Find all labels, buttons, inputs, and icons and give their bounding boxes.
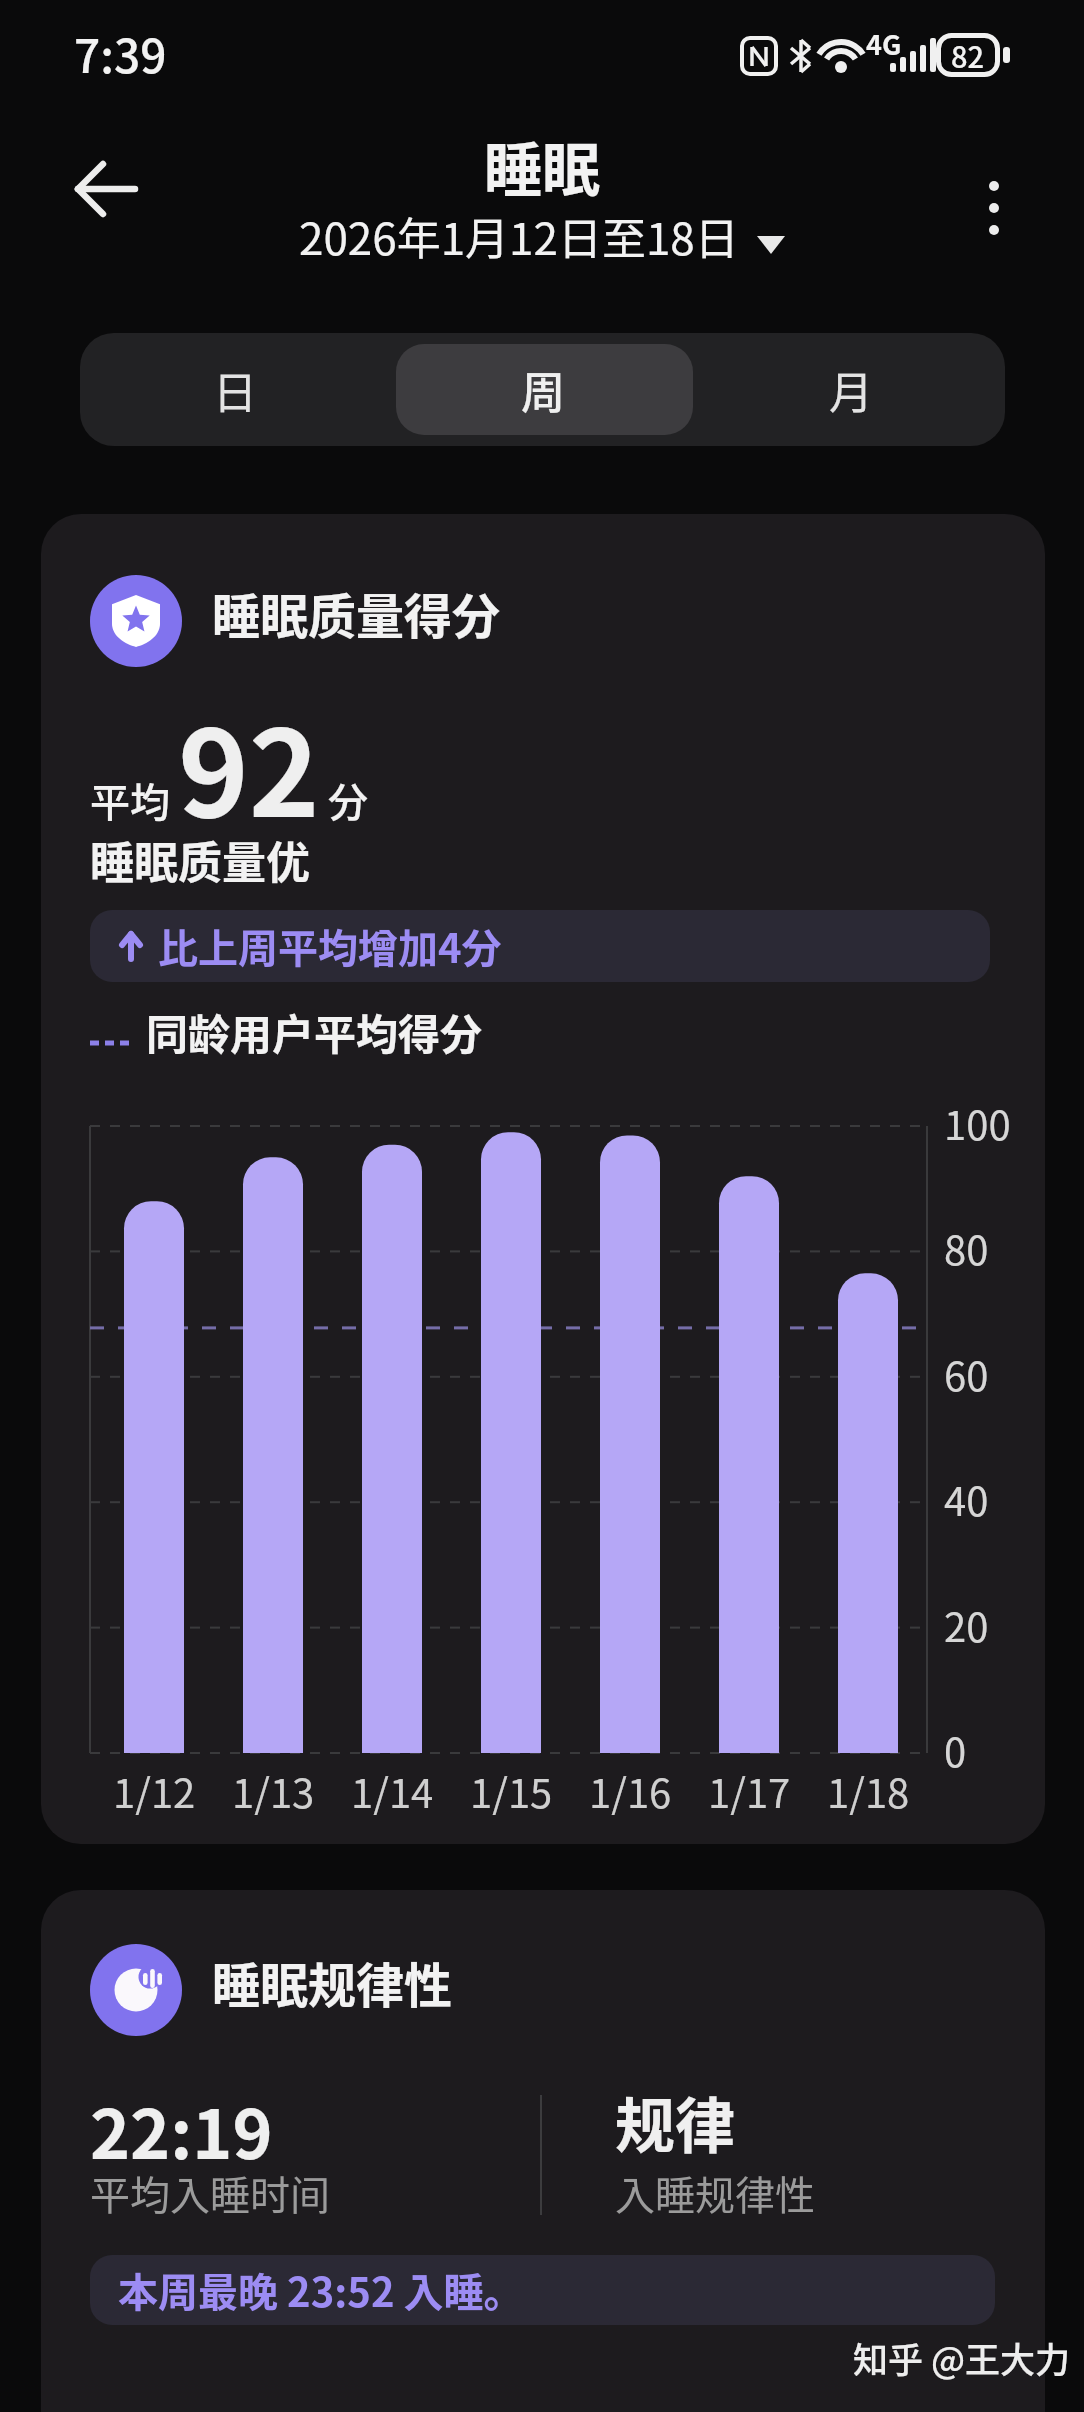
staticText: 22:19: [90, 2080, 273, 2178]
staticText: 分: [328, 771, 368, 829]
button[interactable]: [56, 150, 146, 230]
button[interactable]: 2026年1月12日至18日: [0, 204, 1084, 268]
staticText: 平均入睡时间: [90, 2164, 330, 2222]
staticText: 2026年1月12日至18日: [299, 204, 739, 268]
staticText: 4G: [866, 24, 902, 63]
staticText: 1/13: [232, 1762, 315, 1820]
staticText: 睡眠质量得分: [212, 578, 501, 648]
staticText: 7:39: [74, 20, 167, 87]
staticText: 82: [951, 34, 985, 76]
staticText: 睡眠: [484, 124, 601, 208]
staticText: 0: [944, 1721, 967, 1779]
staticText: 入睡规律性: [615, 2164, 815, 2222]
button[interactable]: 月: [697, 333, 1005, 446]
staticText: 40: [944, 1470, 989, 1528]
staticText: 同龄用户平均得分: [146, 1001, 483, 1062]
staticText: 1/14: [351, 1762, 434, 1820]
button[interactable]: 周: [389, 333, 697, 446]
staticText: 规律: [615, 2078, 735, 2165]
staticText: 本周最晚 23:52 入睡。: [118, 2261, 524, 2319]
staticText: 20: [944, 1596, 989, 1654]
button[interactable]: [958, 168, 1030, 248]
staticText: 睡眠规律性: [212, 1947, 453, 2017]
staticText: 月: [829, 358, 873, 422]
button[interactable]: 睡眠质量得分: [41, 514, 1045, 1844]
staticText: 比上周平均增加4分: [158, 917, 502, 975]
button[interactable]: 睡眠规律性: [41, 1890, 1045, 2412]
staticText: 平均: [90, 771, 170, 829]
staticText: 80: [944, 1219, 989, 1277]
staticText: 日: [213, 358, 257, 422]
button[interactable]: 日: [80, 333, 389, 446]
staticText: 100: [944, 1094, 1011, 1152]
staticText: 1/18: [827, 1762, 910, 1820]
staticText: 1/12: [113, 1762, 196, 1820]
staticText: 睡眠质量优: [90, 828, 310, 892]
staticText: 1/16: [589, 1762, 672, 1820]
staticText: 92: [178, 678, 320, 852]
staticText: 1/15: [470, 1762, 553, 1820]
staticText: 60: [944, 1345, 989, 1403]
staticText: 1/17: [708, 1762, 791, 1820]
staticText: 知乎 @王大力: [853, 2332, 1070, 2383]
staticText: 周: [521, 358, 565, 422]
